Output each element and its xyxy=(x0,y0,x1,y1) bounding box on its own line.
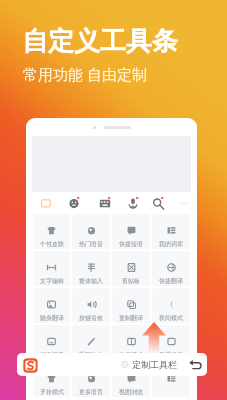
button[interactable]: 热门语音 xyxy=(72,214,110,249)
staticText: 键盘设置 xyxy=(40,351,64,359)
staticText: 繁体输入 xyxy=(79,277,103,285)
button[interactable]: 悬浮键盘 xyxy=(152,325,190,360)
staticText: 分屏模式 xyxy=(119,351,143,359)
staticText: 悬浮键盘 xyxy=(159,351,183,359)
staticText: 快捷短语 xyxy=(119,240,143,248)
button[interactable]: 剪贴板 xyxy=(112,251,150,286)
staticText: 手写输入 xyxy=(79,351,103,359)
button[interactable]: 按键音效 xyxy=(72,288,110,323)
staticText: 文字编辑 xyxy=(40,277,64,285)
button[interactable]: 个性皮肤 xyxy=(33,214,70,249)
staticText: 夜间模式 xyxy=(159,314,183,322)
button[interactable]: 定制工具栏 xyxy=(120,359,177,370)
staticText: 开挂模式 xyxy=(40,388,64,396)
staticText: 剪贴板 xyxy=(122,277,140,285)
button[interactable]: 开挂模式 xyxy=(33,362,70,397)
button[interactable]: Keyboard xyxy=(98,196,112,210)
staticText: 自定义工具条 xyxy=(22,25,178,58)
button[interactable]: 手写输入 xyxy=(72,325,110,360)
staticText: 更多语言 xyxy=(79,388,103,396)
staticText: 我的词库 xyxy=(159,240,183,248)
button[interactable]: 键盘设置 xyxy=(33,325,70,360)
staticText: 个性皮肤 xyxy=(40,240,64,248)
button[interactable]: Skin xyxy=(39,196,53,210)
button[interactable]: Emoji xyxy=(67,196,81,210)
button[interactable]: More xyxy=(177,196,191,210)
button[interactable]: Sogou xyxy=(21,356,39,374)
staticText: 定制工具栏 xyxy=(132,359,177,370)
button[interactable]: 我的词库 xyxy=(152,214,190,249)
staticText: 快捷翻译 xyxy=(159,277,183,285)
button[interactable]: 文字编辑 xyxy=(33,251,70,286)
button[interactable]: Back xyxy=(187,356,204,373)
staticText: 随身翻译 xyxy=(40,314,64,322)
staticText: 复制翻译 xyxy=(119,314,143,322)
staticText: 按键音效 xyxy=(79,314,103,322)
button[interactable]: 随身翻译 xyxy=(33,288,70,323)
button[interactable]: 分屏模式 xyxy=(112,325,150,360)
staticText: 热门语音 xyxy=(79,240,103,248)
button[interactable]: Voice xyxy=(126,196,140,210)
button[interactable]: 更多语言 xyxy=(72,362,110,397)
button[interactable]: 繁体输入 xyxy=(72,251,110,286)
button[interactable]: Search xyxy=(151,196,165,210)
staticText: 视图浏览 xyxy=(119,388,143,396)
button[interactable]: 复制翻译 xyxy=(112,288,150,323)
button[interactable]: 视图浏览 xyxy=(112,362,150,397)
button[interactable]: 快捷翻译 xyxy=(152,251,190,286)
staticText: 常用功能 自由定制 xyxy=(23,64,147,84)
button[interactable]: 快捷短语 xyxy=(112,214,150,249)
button[interactable] xyxy=(152,362,190,397)
button[interactable]: 夜间模式 xyxy=(152,288,190,323)
